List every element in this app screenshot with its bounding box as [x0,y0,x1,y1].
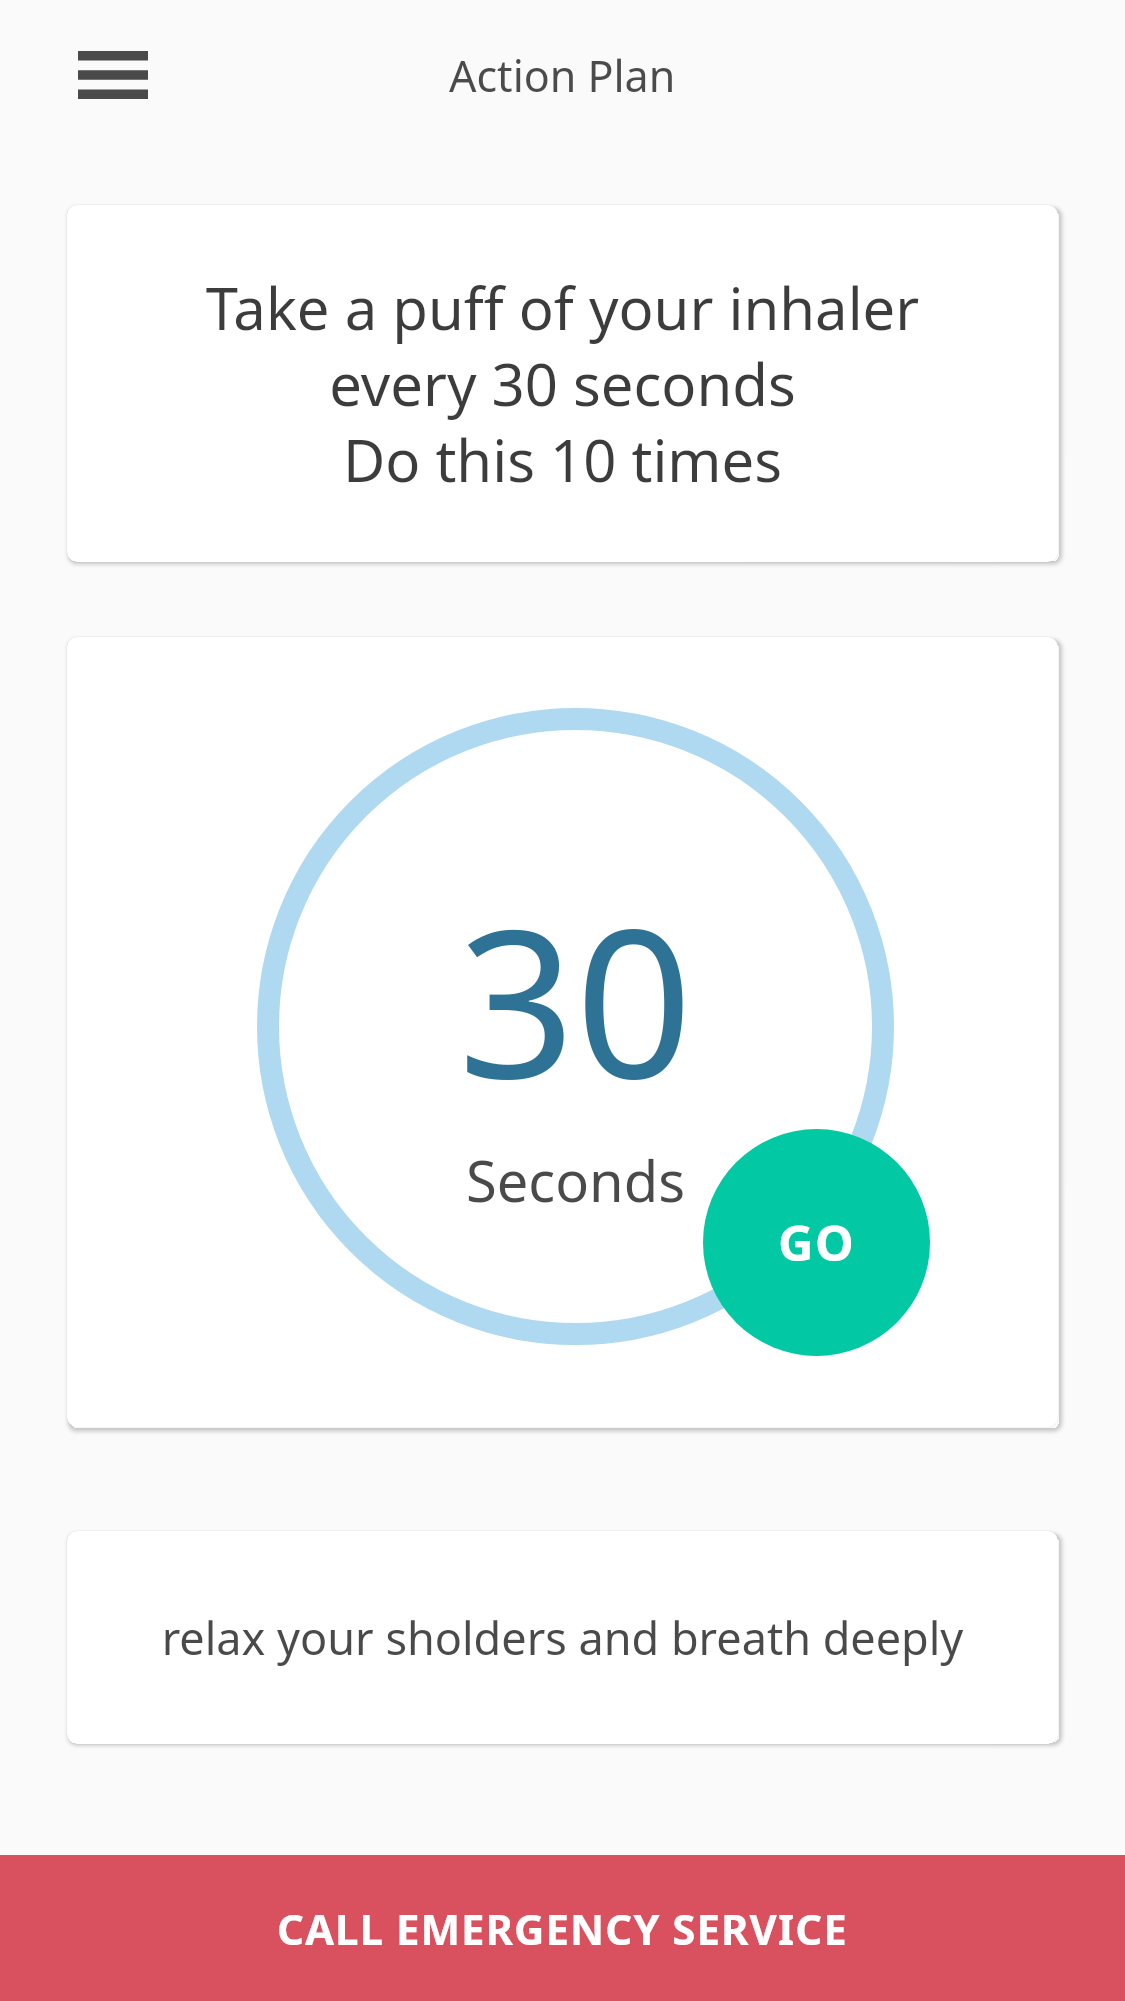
button[interactable]: GO [703,1129,930,1356]
button[interactable]: Take a puff of your inhaler every 30 sec… [67,205,1058,562]
staticText: 30 [458,859,693,1138]
staticText: relax your sholders and breath deeply [81,1607,1044,1668]
button[interactable]: CALL EMERGENCY SERVICE [0,1855,1125,2001]
staticText: CALL EMERGENCY SERVICE [277,1900,848,1957]
staticText: GO [778,1209,856,1276]
staticText: Action Plan [449,46,676,105]
button[interactable]: Open navigation menu [52,25,174,125]
button[interactable]: relax your sholders and breath deeply [67,1531,1058,1744]
staticText: Take a puff of your inhaler every 30 sec… [77,268,1048,499]
staticText: Seconds [466,1142,685,1218]
